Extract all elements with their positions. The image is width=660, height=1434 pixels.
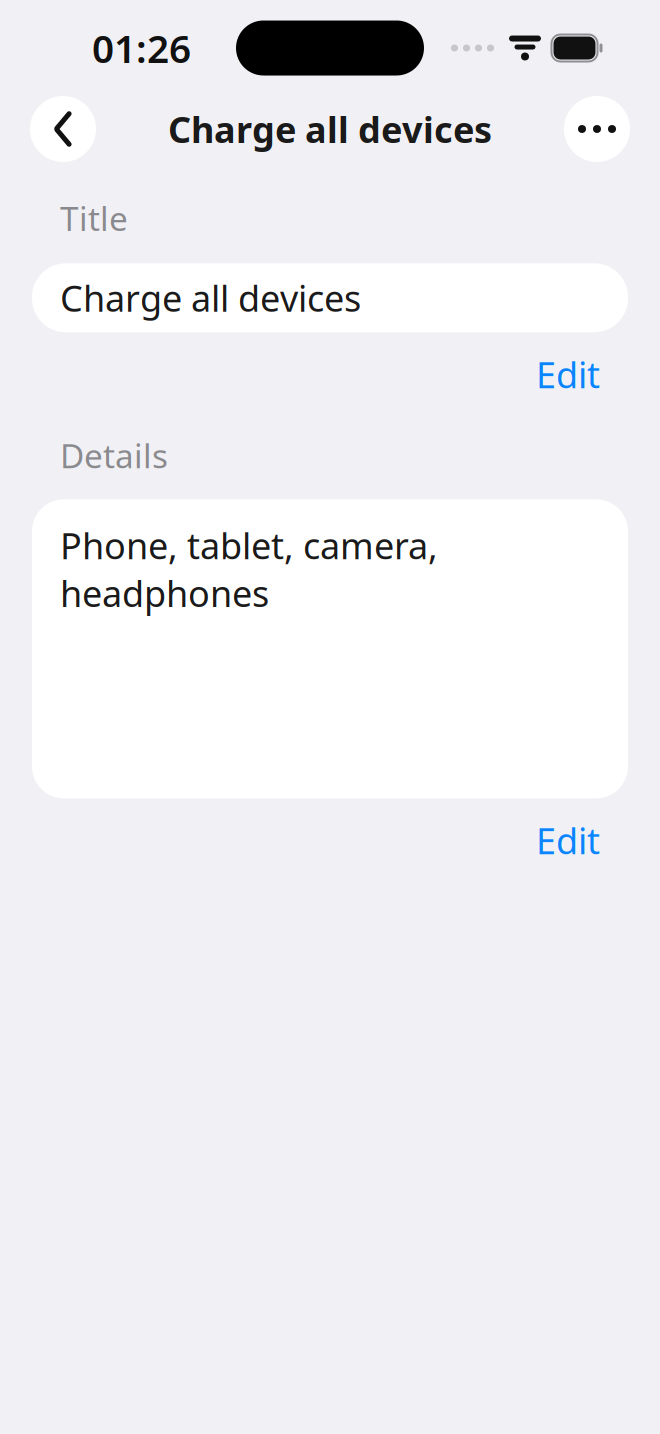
staticText: Title	[60, 196, 128, 240]
button[interactable]: Edit	[530, 346, 606, 402]
button[interactable]: Back	[30, 96, 96, 162]
staticText: Phone, tablet, camera, headphones	[60, 521, 438, 617]
button[interactable]: Charge all devices	[32, 263, 628, 332]
button[interactable]: More options	[564, 96, 630, 162]
staticText: Edit	[536, 816, 600, 864]
staticText: Charge all devices	[60, 274, 361, 322]
staticText: Edit	[536, 350, 600, 398]
button[interactable]: Edit	[530, 812, 606, 868]
button[interactable]: Phone, tablet, camera, headphones	[32, 499, 628, 798]
staticText: Details	[60, 433, 168, 477]
staticText: 01:26	[92, 22, 191, 74]
staticText: Charge all devices	[168, 105, 492, 153]
